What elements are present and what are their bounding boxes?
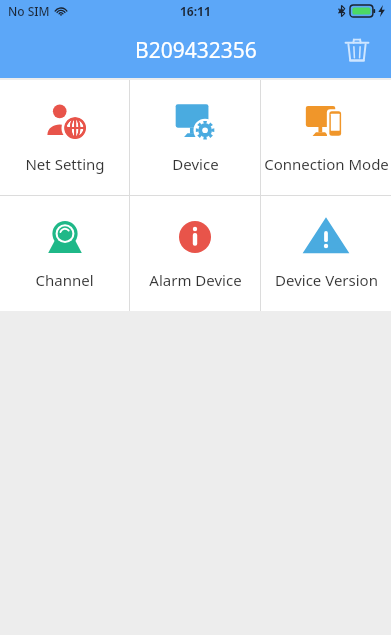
- button[interactable]: Delete: [335, 28, 379, 72]
- staticText: Alarm Device: [149, 270, 242, 290]
- staticText: Channel: [35, 270, 94, 290]
- staticText: Connection Mode: [264, 154, 389, 174]
- button[interactable]: Channel: [0, 196, 129, 311]
- staticText: Device: [172, 154, 219, 174]
- button[interactable]: Device: [130, 80, 260, 195]
- staticText: Net Setting: [25, 154, 105, 174]
- staticText: 16:11: [180, 3, 211, 19]
- staticText: B209432356: [135, 36, 257, 65]
- button[interactable]: Alarm Device: [130, 196, 260, 311]
- button[interactable]: Connection Mode: [261, 80, 391, 195]
- button[interactable]: Device Version: [261, 196, 391, 311]
- button[interactable]: Net Setting: [0, 80, 129, 195]
- staticText: No SIM: [8, 3, 50, 19]
- staticText: Device Version: [275, 270, 378, 290]
